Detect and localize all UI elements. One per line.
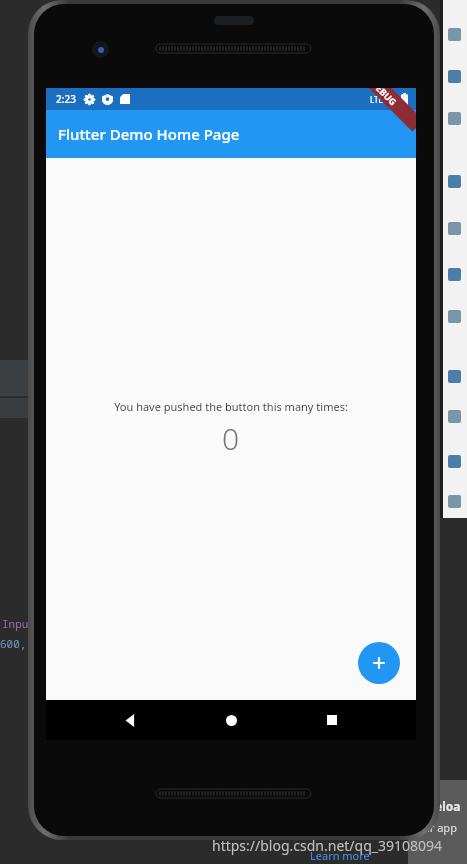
button[interactable]: Recents <box>315 703 349 737</box>
staticText: Inpu <box>2 616 29 631</box>
staticText: LTE <box>370 94 383 105</box>
button[interactable]: Increment <box>358 642 400 684</box>
staticText: Flutter Demo Home Page <box>58 124 240 144</box>
staticText: DEBUG <box>369 88 400 108</box>
staticText: reloa <box>430 798 461 814</box>
button[interactable]: Home <box>214 703 248 737</box>
staticText: Learn more <box>310 848 370 863</box>
staticText: ur app <box>423 820 457 835</box>
staticText: https://blog.csdn.net/qq_39108094 <box>212 836 443 855</box>
button[interactable]: Flutter Demo Home Page <box>46 110 416 158</box>
button[interactable]: Back <box>113 703 147 737</box>
staticText: 0 <box>222 418 240 459</box>
staticText: 2:23 <box>56 92 76 106</box>
staticText: 600, <box>0 636 27 651</box>
staticText: You have pushed the button this many tim… <box>114 399 348 414</box>
